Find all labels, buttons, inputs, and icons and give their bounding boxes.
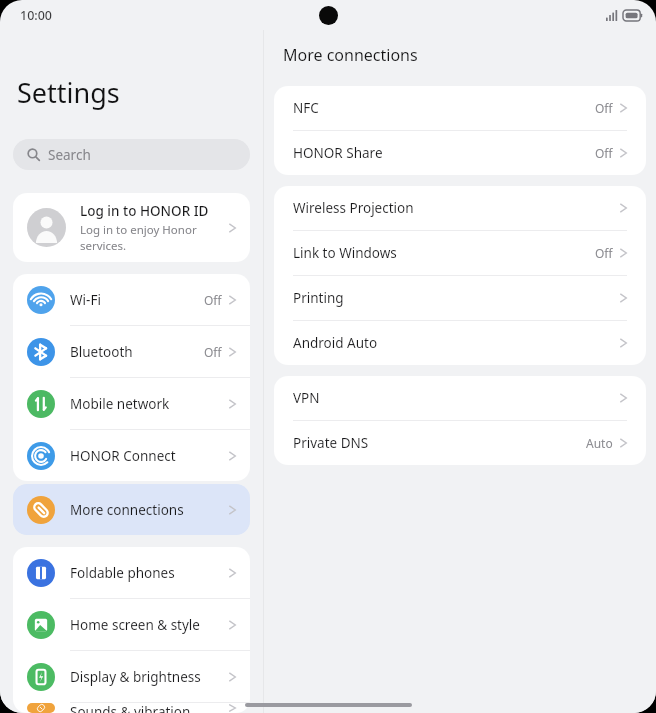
button[interactable]: Foldable phones: [13, 547, 250, 598]
staticText: NFC: [293, 99, 595, 117]
staticText: HONOR Share: [293, 144, 595, 162]
staticText: 10:00: [20, 7, 53, 24]
other: Open: [620, 202, 627, 214]
button[interactable]: Bluetooth: [13, 326, 250, 377]
staticText: Auto: [586, 435, 613, 451]
button[interactable]: VPN: [274, 376, 646, 420]
button[interactable]: Mobile network: [13, 378, 250, 429]
other: Open: [229, 346, 236, 358]
staticText: Wireless Projection: [293, 199, 620, 217]
button[interactable]: Wi-Fi: [13, 274, 250, 325]
staticText: Link to Windows: [293, 244, 595, 262]
other: Open: [229, 619, 236, 631]
button[interactable]: Printing: [274, 276, 646, 320]
staticText: Private DNS: [293, 434, 586, 452]
button[interactable]: More connections: [13, 484, 250, 535]
other: Open: [229, 671, 236, 683]
staticText: Off: [204, 344, 222, 360]
staticText: Home screen & style: [70, 616, 229, 634]
staticText: Android Auto: [293, 334, 620, 352]
staticText: HONOR Connect: [70, 447, 229, 465]
staticText: services.: [80, 238, 127, 254]
button[interactable]: Home screen & style: [13, 599, 250, 650]
button[interactable]: Android Auto: [274, 321, 646, 365]
staticText: Off: [595, 245, 613, 261]
other: Open: [229, 398, 236, 410]
other: Open: [620, 147, 627, 159]
staticText: VPN: [293, 389, 620, 407]
other: Open: [229, 504, 236, 516]
other: Open: [229, 703, 236, 713]
other: Open: [620, 337, 627, 349]
other: Open: [620, 247, 627, 259]
other: Open: [620, 437, 627, 449]
staticText: Display & brightness: [70, 668, 229, 686]
other: Open: [620, 292, 627, 304]
button[interactable]: Display & brightness: [13, 651, 250, 702]
staticText: Bluetooth: [70, 343, 204, 361]
button[interactable]: Private DNS: [274, 421, 646, 465]
button[interactable]: NFC: [274, 86, 646, 130]
staticText: Foldable phones: [70, 564, 229, 582]
staticText: Log in to HONOR ID: [80, 202, 209, 220]
button[interactable]: Sounds & vibration: [13, 703, 250, 713]
other: Open: [229, 294, 236, 306]
staticText: More connections: [70, 501, 229, 519]
other: Open: [229, 567, 236, 579]
staticText: Sounds & vibration: [70, 703, 229, 713]
other: Open: [620, 102, 627, 114]
button[interactable]: Search: [13, 139, 250, 170]
staticText: Search: [48, 146, 91, 164]
staticText: Printing: [293, 289, 620, 307]
staticText: Wi-Fi: [70, 291, 204, 309]
button[interactable]: Log in to HONOR ID: [13, 193, 250, 262]
button[interactable]: HONOR Connect: [13, 430, 250, 481]
staticText: More connections: [283, 44, 418, 66]
staticText: Off: [595, 100, 613, 116]
button[interactable]: Wireless Projection: [274, 186, 646, 230]
button[interactable]: HONOR Share: [274, 131, 646, 175]
staticText: Settings: [17, 74, 120, 111]
staticText: Log in to enjoy Honor: [80, 222, 197, 238]
staticText: Mobile network: [70, 395, 229, 413]
button[interactable]: Link to Windows: [274, 231, 646, 275]
staticText: Off: [595, 145, 613, 161]
other: Open: [229, 222, 236, 234]
other: Open: [620, 392, 627, 404]
staticText: Off: [204, 292, 222, 308]
other: Open: [229, 450, 236, 462]
